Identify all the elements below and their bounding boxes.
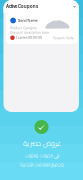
staticText: عروض حصرية: [22, 137, 60, 150]
staticText: Discount description here: [10, 31, 49, 34]
button[interactable]: Brand Name: [6, 13, 78, 44]
button[interactable]: Active Coupons: [3, 0, 79, 13]
staticText: Brand Name: [17, 18, 37, 23]
staticText: Coupon Code: [53, 36, 74, 40]
staticText: Active Coupons: [6, 4, 38, 9]
staticText: Expires 00:00:00: [16, 36, 42, 39]
staticText: في الخيارات والفئات: [24, 151, 59, 160]
staticText: Product Category: [10, 26, 37, 30]
staticText: وجميع العلامات التجارية: [19, 160, 63, 169]
